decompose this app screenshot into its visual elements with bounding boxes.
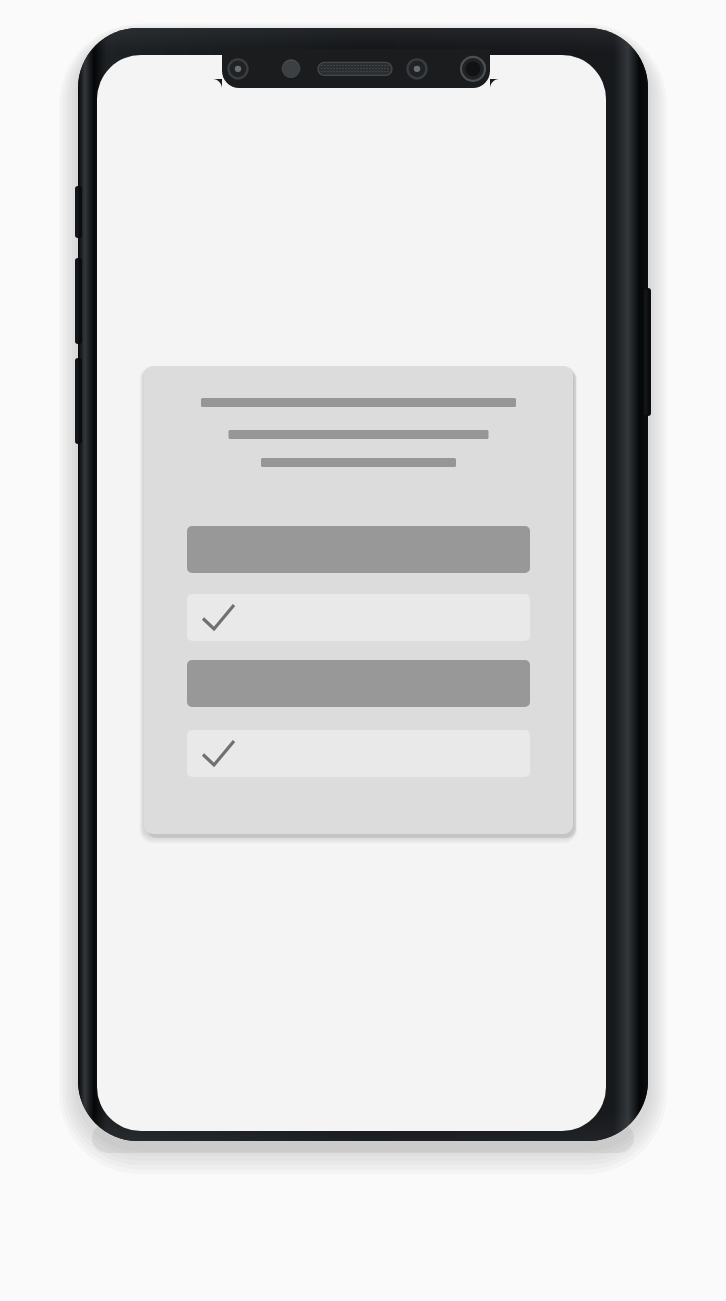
- button[interactable]: Completed item, checked: [187, 730, 530, 777]
- button[interactable]: Completed item, checked: [187, 594, 530, 641]
